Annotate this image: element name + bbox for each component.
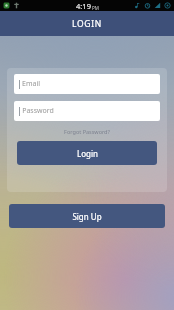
staticText: PM <box>92 5 99 11</box>
button[interactable]: Email <box>14 74 160 94</box>
button[interactable]: Forgot Password? <box>61 127 113 136</box>
staticText: Login <box>77 148 98 159</box>
staticText: Forgot Password? <box>64 128 110 135</box>
staticText: Email <box>22 79 40 89</box>
staticText: Sign Up <box>72 211 102 222</box>
button[interactable]: Sign Up <box>9 204 165 228</box>
button[interactable]: Login <box>17 141 157 165</box>
staticText: Password <box>22 106 54 116</box>
staticText: LOGIN <box>72 18 102 30</box>
button[interactable]: Password <box>14 101 160 121</box>
staticText: 4:19 <box>76 1 91 11</box>
